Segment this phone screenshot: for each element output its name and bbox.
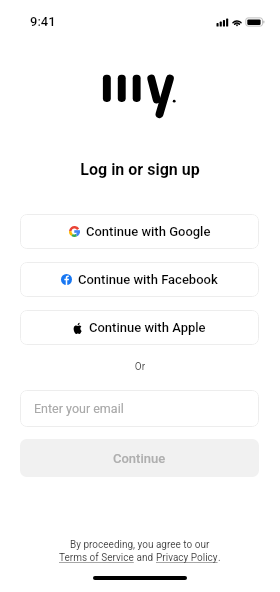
staticText: Continue with Facebook (78, 272, 218, 287)
staticText: Enter your email (34, 401, 124, 416)
staticText: Continue (113, 451, 166, 466)
button[interactable]: Continue with Facebook (20, 262, 259, 297)
staticText: 9:41 (30, 14, 56, 29)
staticText: and (134, 552, 156, 564)
button[interactable]: Continue with Apple (20, 310, 259, 345)
staticText: Or (0, 361, 280, 373)
staticText: Terms of Service (59, 552, 134, 564)
staticText: Log in or sign up (0, 160, 280, 179)
staticText: . (218, 552, 221, 564)
staticText: Privacy Policy (156, 552, 218, 564)
button[interactable]: Continue with Google (20, 214, 259, 249)
staticText: Continue with Google (86, 224, 211, 239)
staticText: By proceeding, you agree to our (70, 539, 210, 551)
button[interactable]: Terms of Service (59, 552, 221, 564)
button[interactable]: Enter your email (20, 390, 259, 427)
staticText: Continue with Apple (89, 320, 206, 335)
button[interactable]: Continue (20, 439, 259, 477)
